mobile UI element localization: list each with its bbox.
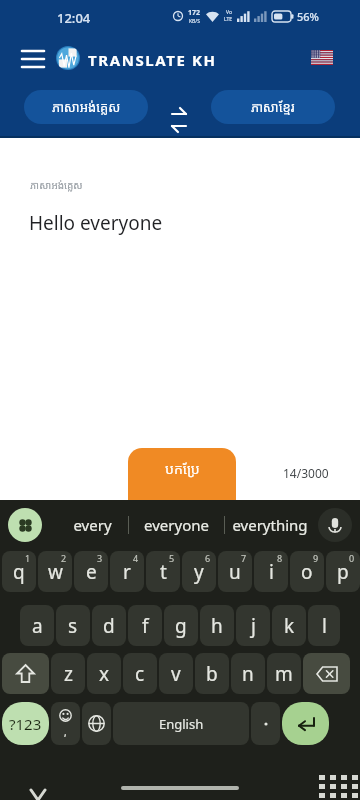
button[interactable]: r	[110, 551, 144, 592]
button[interactable]	[82, 702, 111, 745]
staticText: ភាសាអង់គ្លេស	[52, 98, 121, 116]
staticText: m	[275, 661, 293, 687]
staticText: 6	[205, 552, 211, 564]
staticText: n	[242, 661, 254, 687]
button[interactable]: f	[128, 605, 162, 646]
staticText: 0	[349, 552, 355, 564]
button[interactable]: v	[159, 653, 193, 694]
staticText: every	[73, 515, 112, 535]
staticText: 1	[25, 552, 31, 564]
staticText: l	[322, 613, 327, 639]
staticText: p	[337, 559, 349, 585]
button[interactable]: ភាសាអង់គ្លេស	[24, 90, 148, 124]
staticText: ?123	[9, 714, 42, 734]
button[interactable]	[2, 653, 49, 694]
staticText: g	[175, 613, 187, 639]
button[interactable]: everything	[225, 508, 314, 542]
staticText: everyone	[144, 515, 209, 535]
button[interactable]: q	[2, 551, 36, 592]
button[interactable]: w	[38, 551, 72, 592]
button[interactable]: Voice input	[318, 508, 352, 542]
button[interactable]: s	[56, 605, 90, 646]
button[interactable]: n	[231, 653, 265, 694]
button[interactable]	[282, 702, 329, 745]
staticText: 14/3000	[283, 465, 329, 481]
button[interactable]: Menu	[20, 46, 46, 72]
staticText: y	[194, 559, 204, 585]
staticText: c	[135, 661, 145, 687]
button[interactable]: every	[56, 508, 128, 542]
button[interactable]: m	[267, 653, 301, 694]
staticText: v	[171, 661, 181, 687]
staticText: 5	[169, 552, 175, 564]
staticText: KB/S	[189, 18, 200, 24]
button[interactable]: h	[200, 605, 234, 646]
staticText: u	[229, 559, 241, 585]
staticText: 8	[277, 552, 283, 564]
staticText: Hello everyone	[29, 210, 163, 236]
button[interactable]: Swap languages	[167, 96, 191, 118]
staticText: ភាសាអង់គ្លេស	[30, 178, 83, 192]
button[interactable]: i	[254, 551, 288, 592]
staticText: 172	[188, 8, 201, 18]
button[interactable]: everyone	[129, 508, 224, 542]
staticText: e	[86, 559, 97, 585]
staticText: 4	[133, 552, 139, 564]
staticText: ,	[64, 725, 67, 739]
staticText: 3	[97, 552, 103, 564]
staticText: i	[269, 559, 274, 585]
staticText: o	[301, 559, 313, 585]
button[interactable]: l	[308, 605, 340, 646]
staticText: s	[68, 613, 78, 639]
staticText: ភាសាខ្មែរ	[251, 98, 295, 116]
button[interactable]: k	[272, 605, 306, 646]
button[interactable]: e	[74, 551, 108, 592]
staticText: h	[211, 613, 223, 639]
staticText: TRANSLATE KH	[88, 50, 217, 70]
button[interactable]: English	[113, 702, 249, 745]
staticText: 12:04	[57, 9, 91, 27]
button[interactable]: ,	[51, 702, 80, 745]
button[interactable]	[303, 653, 350, 694]
button[interactable]: Hide keyboard	[26, 765, 50, 789]
button[interactable]: d	[92, 605, 126, 646]
button[interactable]: Switch keyboard	[316, 767, 338, 783]
staticText: f	[142, 613, 149, 639]
staticText: k	[284, 613, 295, 639]
staticText: everything	[232, 515, 308, 535]
staticText: j	[251, 613, 256, 639]
staticText: បកប្រែ	[165, 459, 200, 478]
button[interactable]: b	[195, 653, 229, 694]
button[interactable]: j	[236, 605, 270, 646]
button[interactable]: Toolbar	[8, 508, 42, 542]
staticText: t	[160, 559, 167, 585]
button[interactable]: t	[146, 551, 180, 592]
button[interactable]: x	[87, 653, 121, 694]
staticText: r	[123, 559, 131, 585]
staticText: 9	[313, 552, 319, 564]
staticText: 2	[61, 552, 67, 564]
staticText: Vo	[226, 9, 232, 16]
staticText: w	[48, 559, 63, 585]
staticText: English	[159, 715, 204, 733]
button[interactable]: ភាសាខ្មែរ	[211, 90, 335, 124]
button[interactable]: c	[123, 653, 157, 694]
button[interactable]: o	[290, 551, 324, 592]
staticText: a	[32, 613, 43, 639]
staticText: q	[13, 559, 25, 585]
staticText: 56%	[297, 9, 319, 24]
button[interactable]: a	[20, 605, 54, 646]
staticText: 7	[241, 552, 247, 564]
staticText: x	[99, 661, 110, 687]
button[interactable]: y	[182, 551, 216, 592]
button[interactable]: g	[164, 605, 198, 646]
button[interactable]: បកប្រែ	[128, 448, 236, 500]
button[interactable]	[251, 702, 280, 745]
staticText: b	[206, 661, 218, 687]
staticText: d	[103, 613, 115, 639]
button[interactable]: p	[326, 551, 360, 592]
button[interactable]: ?123	[2, 702, 49, 745]
staticText: LTE	[224, 16, 233, 23]
button[interactable]: z	[51, 653, 85, 694]
button[interactable]: u	[218, 551, 252, 592]
